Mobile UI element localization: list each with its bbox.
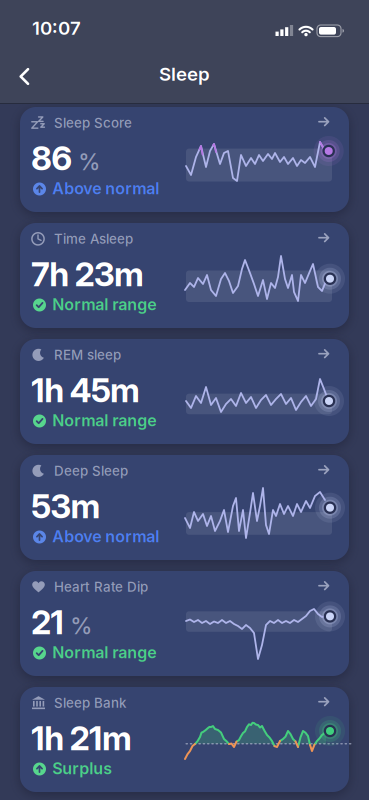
staticText: Sleep Score — [54, 115, 132, 131]
button[interactable]: Sleep Bank — [20, 687, 349, 792]
staticText: 53m — [31, 486, 100, 526]
staticText: % — [70, 613, 92, 639]
staticText: 7h 23m — [31, 254, 144, 294]
staticText: Sleep — [159, 63, 210, 85]
staticText: Sleep Bank — [54, 695, 126, 711]
staticText: Surplus — [52, 759, 112, 778]
button[interactable]: Deep Sleep — [20, 455, 349, 560]
staticText: Normal range — [52, 643, 156, 662]
staticText: 21 — [31, 602, 64, 642]
button[interactable]: Sleep Score — [20, 107, 349, 212]
staticText: Normal range — [52, 411, 156, 430]
staticText: Normal range — [52, 295, 156, 314]
staticText: Heart Rate Dip — [54, 579, 148, 595]
staticText: Deep Sleep — [54, 463, 128, 479]
button[interactable]: Time Asleep — [20, 223, 349, 328]
staticText: 86 — [31, 138, 72, 178]
staticText: Time Asleep — [54, 231, 133, 247]
staticText: 1h 45m — [31, 370, 140, 410]
staticText: 1h 21m — [31, 718, 132, 758]
staticText: 10:07 — [32, 17, 81, 39]
staticText: Above normal — [52, 527, 159, 546]
staticText: Above normal — [52, 179, 159, 198]
button[interactable]: Back — [9, 58, 39, 95]
staticText: REM sleep — [54, 347, 121, 363]
button[interactable]: REM sleep — [20, 339, 349, 444]
button[interactable]: Heart Rate Dip — [20, 571, 349, 676]
staticText: % — [78, 149, 100, 175]
